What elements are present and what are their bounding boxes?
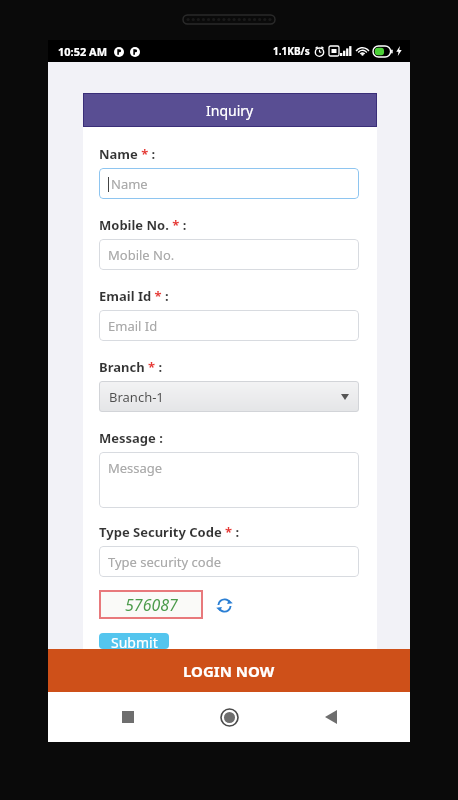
staticText: Mobile No. [108, 246, 175, 264]
staticText: 10:52 AM [58, 44, 108, 59]
button[interactable]: Inquiry [83, 93, 377, 127]
staticText: Name [111, 175, 148, 193]
staticText: Branch * : [99, 358, 163, 376]
button[interactable]: Mobile No. [99, 239, 359, 270]
button[interactable]: LOGIN NOW [48, 649, 410, 692]
staticText: LOGIN NOW [183, 661, 275, 681]
button[interactable]: Message [99, 452, 359, 508]
staticText: 1.1KB/s [273, 44, 310, 58]
button[interactable]: Home [207, 695, 251, 739]
staticText: Type security code [108, 553, 221, 571]
staticText: Message : [99, 429, 163, 447]
button[interactable]: Refresh security code [213, 594, 235, 616]
staticText: Mobile No. * : [99, 216, 187, 234]
staticText: Inquiry [206, 101, 254, 120]
button[interactable]: Recent apps [106, 695, 150, 739]
button[interactable]: Back [309, 695, 353, 739]
button[interactable]: Email Id [99, 310, 359, 341]
staticText: Branch-1 [109, 388, 164, 406]
staticText: 576087 [125, 594, 178, 616]
staticText: Email Id * : [99, 287, 169, 305]
button[interactable]: Submit [99, 633, 169, 649]
button[interactable]: Branch-1 [99, 381, 359, 412]
staticText: Message [108, 459, 163, 477]
button[interactable]: Name [99, 168, 359, 199]
staticText: Email Id [108, 317, 158, 335]
button[interactable]: 576087 [99, 590, 203, 619]
staticText: Type Security Code * : [99, 523, 240, 541]
staticText: Submit [111, 633, 158, 649]
staticText: Name * : [99, 145, 156, 163]
button[interactable]: Type security code [99, 546, 359, 577]
